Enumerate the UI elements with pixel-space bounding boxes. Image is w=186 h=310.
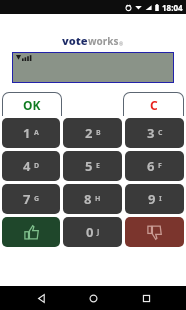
button[interactable]: 3: [125, 118, 184, 148]
staticText: I: [159, 194, 162, 204]
button[interactable]: 4: [2, 151, 60, 181]
staticText: vote: [62, 33, 88, 48]
staticText: C: [150, 97, 158, 113]
button[interactable]: 8: [63, 184, 122, 214]
button[interactable]: Recents: [134, 286, 158, 310]
staticText: D: [34, 161, 40, 171]
staticText: 0: [86, 223, 94, 241]
staticText: F: [158, 161, 162, 171]
staticText: 4: [23, 157, 31, 175]
staticText: ®: [119, 41, 124, 48]
staticText: E: [96, 161, 100, 171]
staticText: 5: [85, 157, 93, 175]
staticText: 8: [84, 190, 92, 208]
staticText: 3: [147, 124, 155, 142]
staticText: works: [88, 34, 119, 48]
staticText: C: [158, 128, 163, 138]
button[interactable]: 1: [2, 118, 60, 148]
button[interactable]: 2: [63, 118, 122, 148]
button[interactable]: Back: [29, 286, 53, 310]
button[interactable]: OK: [3, 93, 61, 116]
button[interactable]: 5: [63, 151, 122, 181]
button[interactable]: 9: [125, 184, 184, 214]
staticText: 18:04: [162, 2, 183, 13]
button[interactable]: C: [124, 93, 183, 116]
staticText: J: [97, 227, 100, 237]
staticText: 9: [148, 190, 156, 208]
staticText: 6: [147, 157, 155, 175]
button[interactable]: Home: [81, 286, 105, 310]
staticText: 7: [23, 190, 31, 208]
staticText: B: [96, 128, 101, 138]
staticText: H: [95, 194, 101, 204]
staticText: 1: [23, 124, 31, 142]
button[interactable]: 7: [2, 184, 60, 214]
staticText: OK: [23, 97, 41, 113]
staticText: 2: [85, 124, 93, 142]
button[interactable]: 0: [63, 217, 122, 247]
staticText: G: [34, 194, 40, 204]
staticText: A: [34, 128, 39, 138]
button[interactable]: Yes: [2, 217, 60, 247]
button[interactable]: 6: [125, 151, 184, 181]
button[interactable]: No: [125, 217, 184, 247]
